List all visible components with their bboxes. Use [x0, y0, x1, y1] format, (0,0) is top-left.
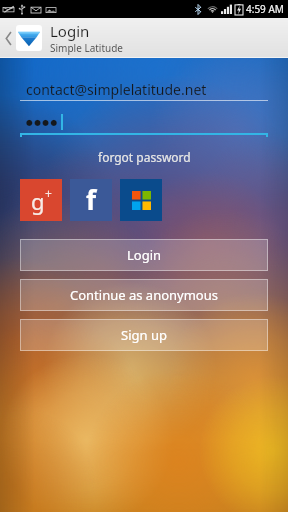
- staticText: forgot password: [98, 149, 191, 165]
- button[interactable]: forgot password: [20, 149, 268, 165]
- staticText: g: [31, 186, 45, 216]
- staticText: Sign up: [121, 326, 167, 344]
- staticText: Continue as anonymous: [70, 286, 218, 304]
- button[interactable]: Sign in with Microsoft: [120, 179, 162, 221]
- staticText: Login: [127, 246, 162, 264]
- button[interactable]: Sign in with Facebook: [70, 179, 112, 221]
- button[interactable]: Continue as anonymous: [20, 279, 268, 311]
- staticText: Simple Latitude: [50, 41, 124, 55]
- staticText: contact@simplelatitude.net: [26, 80, 207, 99]
- staticText: 4:59 AM: [246, 2, 284, 16]
- button[interactable]: Sign up: [20, 319, 268, 351]
- button[interactable]: Login: [20, 239, 268, 271]
- staticText: +: [45, 185, 52, 201]
- staticText: f: [86, 182, 97, 217]
- button[interactable]: Sign in with Google Plus: [20, 179, 62, 221]
- button[interactable]: Navigate up: [0, 18, 16, 58]
- button[interactable]: ●●●●: [20, 111, 268, 133]
- staticText: Login: [50, 21, 90, 41]
- button[interactable]: contact@simplelatitude.net: [20, 78, 268, 100]
- staticText: ●●●●: [26, 118, 59, 127]
